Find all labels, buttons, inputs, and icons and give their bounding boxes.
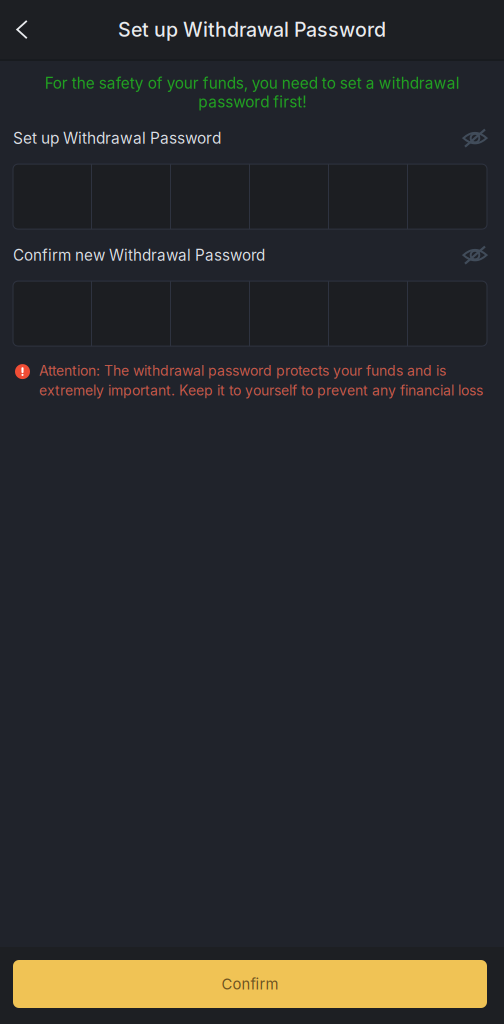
- staticText: Confirm: [221, 975, 278, 993]
- button[interactable]: Confirm new Withdrawal Password: [0, 281, 504, 346]
- button[interactable]: Set up Withdrawal Password: [0, 164, 504, 229]
- button[interactable]: Confirm: [13, 960, 487, 1008]
- staticText: Set up Withdrawal Password: [118, 18, 386, 41]
- staticText: For the safety of your funds, you need t…: [44, 74, 459, 111]
- staticText: Confirm new Withdrawal Password: [13, 246, 265, 264]
- button[interactable]: Toggle password visibility: [454, 238, 496, 272]
- button[interactable]: Back: [0, 7, 44, 51]
- button[interactable]: Toggle password visibility: [454, 121, 496, 155]
- staticText: Attention: The withdrawal password prote…: [39, 362, 483, 399]
- staticText: Set up Withdrawal Password: [13, 129, 221, 147]
